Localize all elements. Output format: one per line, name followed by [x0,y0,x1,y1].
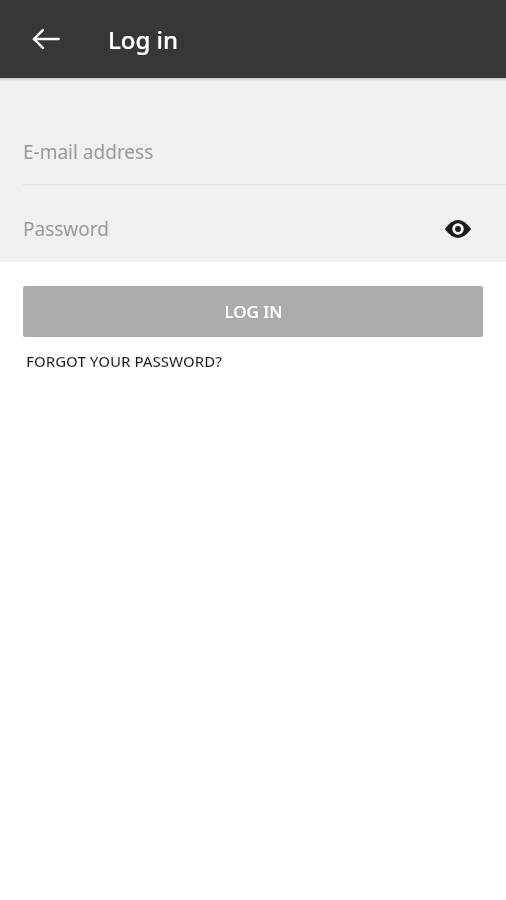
staticText: Password [23,216,109,242]
staticText: E-mail address [23,139,154,165]
staticText: FORGOT YOUR PASSWORD? [26,351,222,371]
button[interactable]: Back [23,16,69,62]
button[interactable]: E-mail address [0,119,506,185]
button[interactable]: LOG IN [23,286,483,337]
button[interactable]: Password [0,196,506,262]
button[interactable]: Show password [435,206,481,252]
staticText: LOG IN [224,300,283,323]
staticText: Log in [108,23,179,56]
button[interactable]: FORGOT YOUR PASSWORD? [26,345,222,377]
